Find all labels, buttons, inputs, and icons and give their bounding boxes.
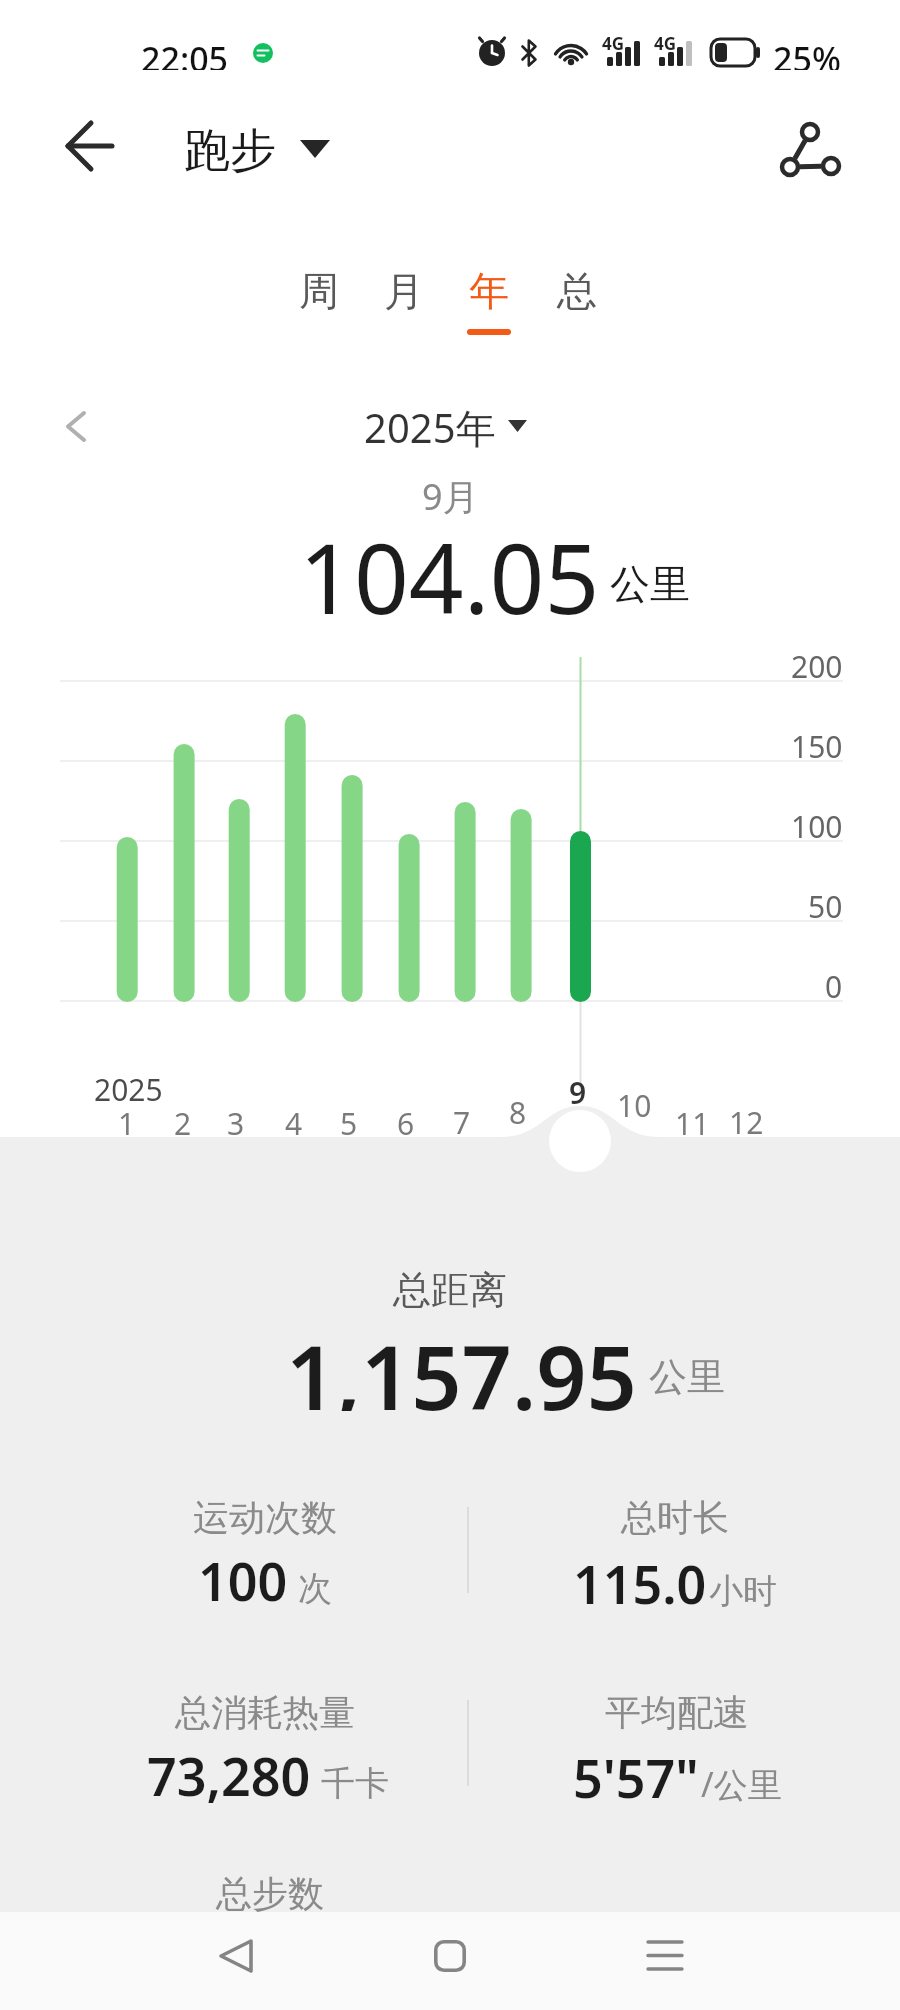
staticText: 1,157.95 [286,1316,637,1411]
staticText: 150 [791,726,843,760]
staticText: 115.0 [573,1548,707,1619]
staticText: /公里 [701,1761,782,1807]
staticText: 总时长 [621,1495,729,1540]
button[interactable]: 跑步 [150,122,310,178]
staticText: 3 [227,1103,245,1137]
staticText: 9 [569,1072,587,1106]
staticText: 0 [825,966,843,1000]
button[interactable] [190,1921,280,1991]
staticText: 总距离 [393,1266,507,1314]
button[interactable] [405,1921,495,1991]
staticText: 2025 [94,1069,163,1103]
staticText: 运动次数 [193,1495,337,1540]
button[interactable]: 2025年 [330,400,530,452]
staticText: 100 [791,806,843,840]
staticText: 4G [654,32,677,54]
staticText: 平均配速 [605,1690,749,1735]
staticText: 5 [340,1103,358,1137]
staticText: 周 [299,266,339,316]
button[interactable] [40,398,100,458]
staticText: 12 [729,1102,764,1136]
staticText: 跑步 [184,122,276,178]
staticText: 100 [198,1545,288,1616]
staticText: 4 [285,1103,303,1137]
button[interactable] [620,1921,710,1991]
staticText: 月 [384,266,424,316]
staticText: 200 [791,646,843,680]
staticText: 2 [174,1103,192,1137]
staticText: 公里 [649,1353,725,1401]
staticText: 6 [397,1103,415,1137]
staticText: 10 [617,1085,652,1119]
staticText: 50 [808,886,843,920]
button[interactable] [50,112,120,182]
staticText: 总步数 [216,1871,324,1916]
button[interactable]: 年 [459,266,519,316]
staticText: 公里 [610,559,690,609]
staticText: 11 [675,1103,710,1137]
button[interactable] [770,112,860,182]
staticText: 9月 [422,472,479,518]
button[interactable]: 月 [374,266,434,316]
staticText: 104.05 [299,511,600,621]
staticText: 4G [602,32,625,54]
staticText: 8 [509,1092,527,1126]
staticText: 22:05 [141,36,229,70]
staticText: 5'57" [573,1742,699,1813]
staticText: 7 [453,1102,471,1136]
staticText: 年 [469,266,509,316]
button[interactable]: 周 [289,266,349,316]
staticText: 小时 [709,1570,777,1613]
staticText: 25% [773,36,841,70]
staticText: 1 [118,1103,136,1137]
staticText: 次 [298,1567,332,1610]
staticText: 2025年 [364,400,496,452]
button[interactable] [549,1110,611,1172]
staticText: 总消耗热量 [175,1690,355,1735]
button[interactable]: 总 [547,266,607,316]
staticText: 千卡 [321,1762,389,1805]
staticText: 73,280 [147,1740,311,1811]
staticText: 总 [557,266,597,316]
